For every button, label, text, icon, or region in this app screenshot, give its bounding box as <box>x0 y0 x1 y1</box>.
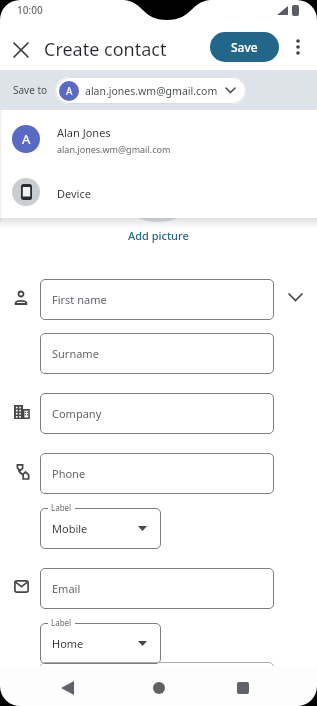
staticText: Save to <box>13 83 48 97</box>
button[interactable]: Home <box>40 623 161 664</box>
staticText: alan.jones.wm@gmail.com <box>85 84 218 98</box>
staticText: Device <box>57 186 91 201</box>
staticText: Company <box>52 406 102 421</box>
button[interactable]: Mobile <box>40 508 161 549</box>
button[interactable]: Email <box>40 568 274 609</box>
staticText: Alan Jones <box>57 125 111 140</box>
staticText: Create contact <box>44 37 167 62</box>
button[interactable] <box>229 674 257 702</box>
button[interactable]: Add picture <box>0 228 317 243</box>
staticText: Add picture <box>128 228 189 243</box>
staticText: Mobile <box>52 521 88 536</box>
staticText: Email <box>52 581 81 596</box>
staticText: Label <box>51 502 72 513</box>
staticText: First name <box>52 292 107 307</box>
button[interactable] <box>290 37 306 57</box>
staticText: Phone <box>52 466 86 481</box>
button[interactable] <box>53 674 81 702</box>
staticText: A <box>22 130 31 148</box>
staticText: 10:00 <box>17 3 43 17</box>
staticText: Surname <box>52 346 99 361</box>
button[interactable]: Phone <box>40 453 274 494</box>
button[interactable] <box>282 284 308 310</box>
button[interactable] <box>145 674 173 702</box>
button[interactable]: Surname <box>40 333 274 374</box>
staticText: A <box>66 84 73 98</box>
staticText: Label <box>51 617 72 628</box>
button[interactable]: Save <box>210 32 279 62</box>
button[interactable]: Company <box>40 393 274 434</box>
button[interactable] <box>2 112 317 164</box>
staticText: alan.jones.wm@gmail.com <box>57 143 171 155</box>
staticText: Save <box>231 39 258 55</box>
staticText: Home <box>52 636 84 651</box>
button[interactable] <box>2 166 317 218</box>
button[interactable] <box>8 37 34 63</box>
button[interactable]: First name <box>40 279 274 320</box>
button[interactable]: A <box>55 77 246 104</box>
